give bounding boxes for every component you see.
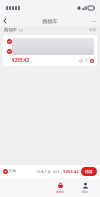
staticText: 1 bbox=[85, 58, 88, 63]
staticText: 购物车 bbox=[56, 190, 65, 194]
staticText: 购物车 bbox=[4, 27, 18, 33]
staticText: 全选 bbox=[9, 169, 17, 174]
staticText: 购物车 bbox=[42, 18, 58, 25]
staticText: 我的 bbox=[82, 190, 88, 194]
button[interactable]: Back bbox=[0, 16, 10, 26]
button[interactable]: ¥255.42 bbox=[3, 35, 97, 66]
button[interactable]: More options bbox=[89, 16, 97, 26]
button[interactable]: 我的 bbox=[75, 180, 95, 196]
staticText: ¥255.42 bbox=[63, 169, 79, 175]
button[interactable]: Select item bbox=[7, 39, 12, 44]
button[interactable]: 结算 bbox=[81, 167, 97, 176]
staticText: 结算 bbox=[85, 169, 93, 174]
button[interactable]: 购物车 bbox=[50, 180, 70, 196]
button[interactable]: 管理 bbox=[89, 28, 96, 32]
staticText: ¥255.42 bbox=[12, 57, 30, 63]
button[interactable]: 全选 bbox=[3, 169, 18, 174]
button[interactable]: Select variant bbox=[7, 49, 12, 54]
button[interactable]: Increase quantity bbox=[90, 59, 94, 63]
staticText: 已选 1 件 合计： bbox=[37, 169, 63, 174]
staticText: 管理 bbox=[89, 28, 96, 32]
staticText: (1) bbox=[19, 28, 23, 33]
button[interactable]: Decrease quantity bbox=[79, 59, 83, 63]
